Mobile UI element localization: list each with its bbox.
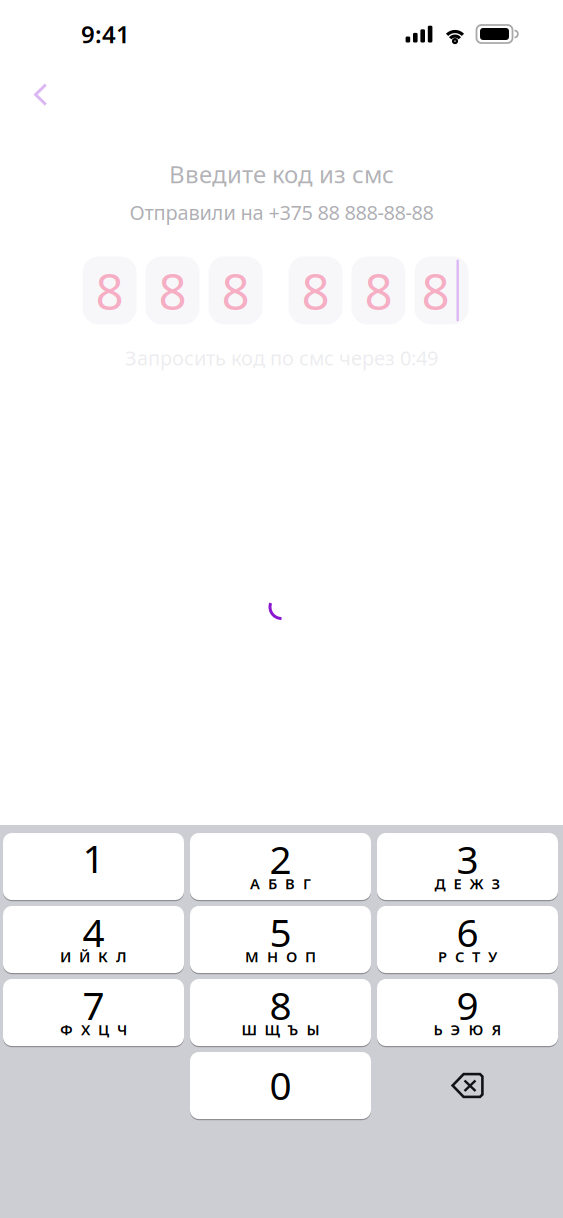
staticText: 8 <box>421 258 449 323</box>
button[interactable]: 1 <box>3 833 184 900</box>
button[interactable]: 7 <box>3 979 184 1046</box>
staticText: Ь Э Ю Я <box>433 1020 501 1039</box>
staticText: 6 <box>456 906 478 958</box>
button[interactable]: 2 <box>190 833 371 900</box>
staticText: 8 <box>269 979 291 1031</box>
button[interactable]: 4 <box>3 906 184 973</box>
staticText: 9:41 <box>81 18 130 50</box>
staticText: 3 <box>456 833 478 885</box>
staticText: И Й К Л <box>60 947 127 966</box>
button[interactable]: 5 <box>190 906 371 973</box>
button[interactable]: 6 <box>377 906 558 973</box>
staticText: Отправили на +375 88 888-88-88 <box>129 199 433 225</box>
button[interactable]: Delete <box>377 1052 558 1119</box>
staticText: 9 <box>456 979 478 1031</box>
staticText: Д Е Ж З <box>434 874 500 893</box>
staticText: 8 <box>158 258 186 323</box>
staticText: М Н О П <box>245 947 316 966</box>
button[interactable]: 0 <box>190 1052 371 1119</box>
staticText: 0 <box>269 1059 291 1111</box>
staticText: 7 <box>82 979 104 1031</box>
button[interactable]: 8 <box>190 979 371 1046</box>
staticText: 1 <box>82 832 104 884</box>
staticText: 2 <box>269 833 291 885</box>
staticText: Ф Х Ц Ч <box>60 1020 127 1039</box>
staticText: 5 <box>269 906 291 958</box>
button[interactable]: Back <box>0 62 69 120</box>
staticText: Р С Т У <box>438 947 497 966</box>
staticText: 8 <box>221 258 249 323</box>
staticText: Ш Щ Ъ Ы <box>241 1020 319 1039</box>
staticText: 8 <box>95 258 123 323</box>
staticText: Запросить код по смс через 0:49 <box>125 344 438 371</box>
staticText: 4 <box>82 906 104 958</box>
staticText: А Б В Г <box>250 874 311 893</box>
staticText: 8 <box>364 258 392 323</box>
staticText: 8 <box>301 258 329 323</box>
button[interactable]: 3 <box>377 833 558 900</box>
button[interactable]: 9 <box>377 979 558 1046</box>
staticText: Введите код из смс <box>169 158 394 190</box>
